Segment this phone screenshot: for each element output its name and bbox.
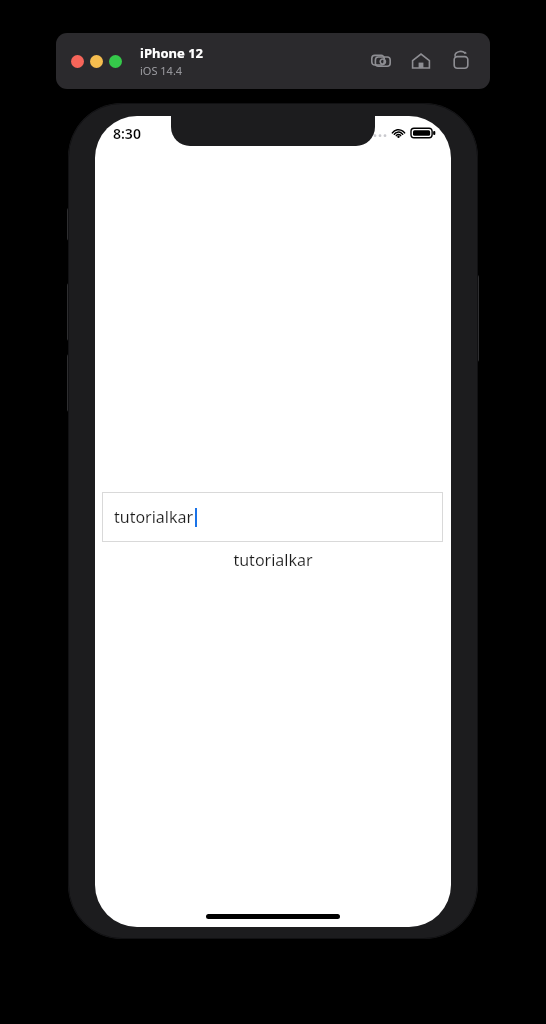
staticText: iPhone 12 [140, 44, 203, 62]
button[interactable]: Rotate [448, 48, 474, 74]
button[interactable]: Home [408, 48, 434, 74]
staticText: iOS 14.4 [140, 63, 183, 78]
staticText: tutorialkar [95, 549, 451, 571]
button[interactable]: Minimise [90, 55, 103, 68]
button[interactable]: Maximise [109, 55, 122, 68]
button[interactable]: Close [71, 55, 84, 68]
button[interactable]: Screenshot [368, 48, 394, 74]
staticText: tutorialkar [114, 506, 194, 528]
button[interactable]: tutorialkar [102, 492, 443, 542]
staticText: 8:30 [113, 124, 141, 143]
